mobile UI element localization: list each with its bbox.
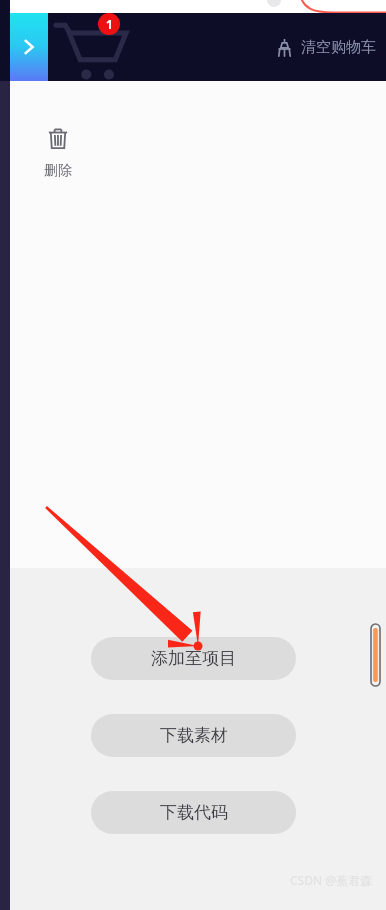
button[interactable]: 清空购物车 [271, 32, 380, 63]
staticText: CSDN @蕉君森 [290, 872, 372, 888]
button[interactable]: 删除 [38, 121, 78, 186]
staticText: 1 [106, 16, 113, 32]
staticText: 添加至项目 [151, 648, 236, 669]
button[interactable]: 下载代码 [91, 791, 296, 834]
button[interactable]: Expand [10, 13, 48, 81]
button[interactable]: 添加至项目 [91, 637, 296, 680]
staticText: 清空购物车 [301, 38, 376, 57]
staticText: 下载代码 [160, 802, 228, 823]
button[interactable]: Shopping cart [52, 15, 130, 79]
staticText: 下载素材 [160, 725, 228, 746]
staticText: 删除 [44, 162, 72, 180]
button[interactable]: 下载素材 [91, 714, 296, 757]
